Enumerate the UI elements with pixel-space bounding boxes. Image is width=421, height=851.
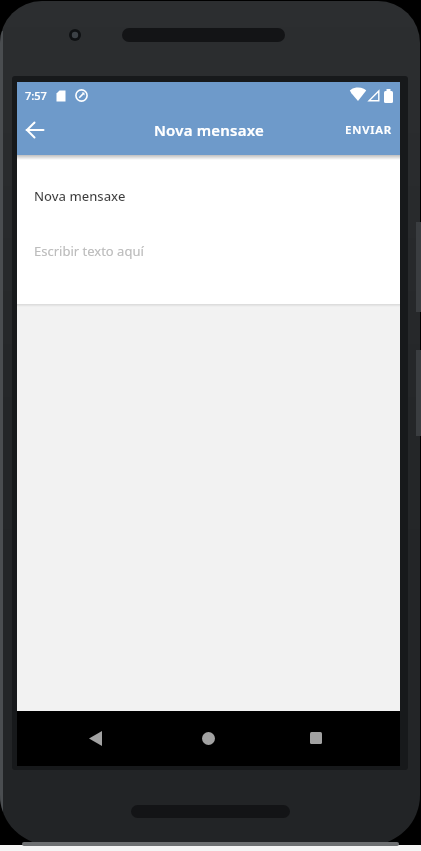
staticText: Nova mensaxe <box>154 120 264 140</box>
button[interactable] <box>17 112 53 148</box>
button[interactable]: Escribir texto aquí <box>34 242 144 260</box>
button[interactable] <box>77 720 113 756</box>
staticText: Nova mensaxe <box>34 187 126 205</box>
staticText: 7:57 <box>25 88 47 103</box>
button[interactable]: ENVIAR <box>341 118 396 142</box>
staticText: ENVIAR <box>345 122 392 138</box>
button[interactable] <box>298 720 334 756</box>
button[interactable] <box>190 720 226 756</box>
